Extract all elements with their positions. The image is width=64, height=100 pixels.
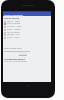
button[interactable]: Celsius - Fahr (4, 25, 34, 28)
button[interactable]: Km to Miles (4, 31, 34, 34)
staticText: Conversion Result (4, 58, 25, 61)
staticText: Enter value here (4, 47, 22, 50)
button[interactable]: Inches - cm (4, 33, 34, 36)
staticText: Sq.m - Sq.ft (7, 36, 20, 39)
staticText: Select Source (4, 17, 20, 20)
staticText: Inches - cm (7, 33, 20, 36)
staticText: Meter - feet (7, 20, 20, 23)
button[interactable]: CONVERT (18, 53, 27, 56)
staticText: 1.00 Kg = 2.2046 Pound (4, 60, 28, 63)
staticText: Km to Miles (7, 31, 20, 34)
button[interactable]: Kg to Pound (4, 22, 34, 25)
staticText: Celsius - Fahr (7, 25, 22, 28)
button[interactable]: Litre - Gallon (4, 28, 34, 31)
staticText: Litre - Gallon (7, 28, 21, 31)
staticText: CONVERT (19, 54, 27, 56)
button[interactable]: Meter - feet (4, 20, 34, 23)
staticText: Metric Converter (4, 13, 23, 16)
staticText: Kg to Pound (7, 22, 21, 25)
button[interactable]: Metric Converter (3, 12, 51, 16)
button[interactable]: Sq.m - Sq.ft (4, 36, 34, 39)
